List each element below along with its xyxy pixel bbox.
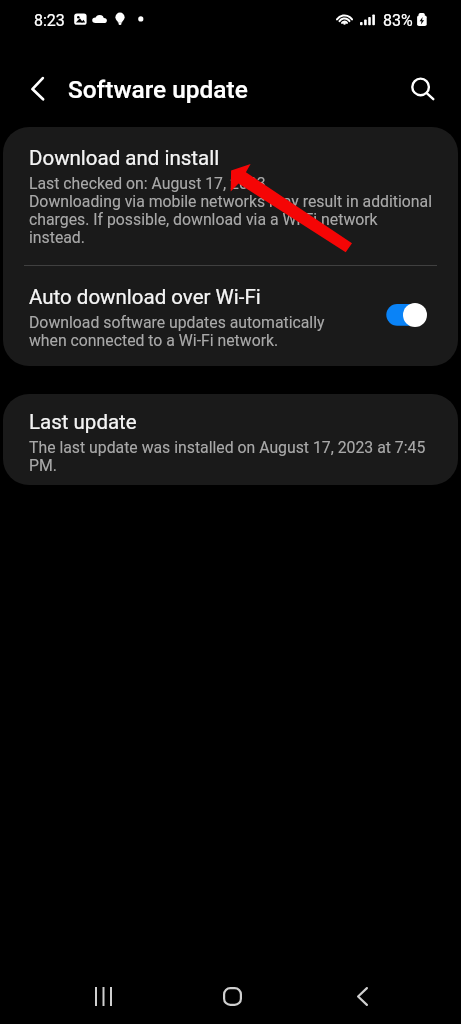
button[interactable]: Recent apps bbox=[80, 972, 128, 1020]
staticText: Last update bbox=[29, 410, 137, 434]
staticText: Software update bbox=[68, 73, 248, 105]
staticText: Download software updates automatically … bbox=[29, 314, 339, 350]
button[interactable]: Download and install bbox=[3, 127, 458, 265]
button[interactable]: Last update bbox=[3, 394, 458, 485]
staticText: 8:23 bbox=[34, 10, 65, 31]
button[interactable]: Home bbox=[208, 972, 256, 1020]
button[interactable]: Auto download over Wi-Fi toggle bbox=[384, 301, 429, 329]
staticText: Auto download over Wi-Fi bbox=[29, 285, 261, 309]
staticText: The last update was installed on August … bbox=[29, 439, 433, 475]
staticText: Download and install bbox=[29, 146, 220, 170]
button[interactable]: Search bbox=[397, 64, 445, 112]
staticText: 83% bbox=[383, 10, 413, 31]
button[interactable]: Navigate up bbox=[13, 64, 61, 112]
button[interactable]: Back bbox=[338, 972, 386, 1020]
staticText: Last checked on: August 17, 2023 Downloa… bbox=[29, 175, 433, 247]
button[interactable]: Auto download over Wi-Fi bbox=[3, 266, 458, 366]
